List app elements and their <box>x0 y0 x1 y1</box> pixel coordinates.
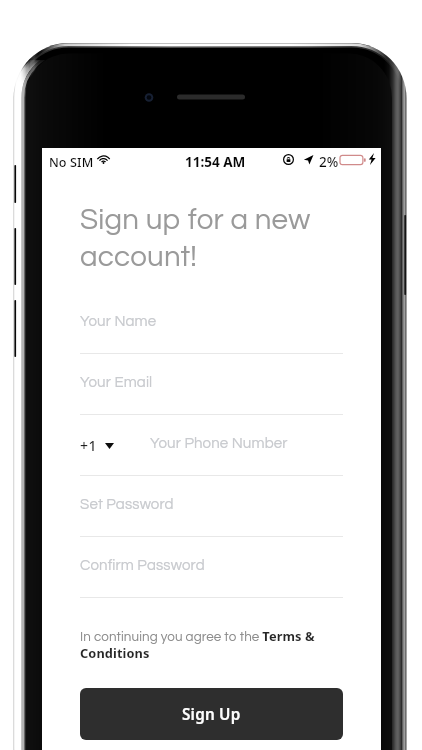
button[interactable]: Set Password <box>42 487 381 548</box>
button[interactable]: Confirm Password <box>42 548 381 609</box>
staticText: Sign up for a new account! <box>80 205 359 272</box>
staticText: 2% <box>319 153 339 171</box>
button[interactable]: In continuing you agree to the Terms & C… <box>80 627 343 661</box>
staticText: +1 <box>80 436 98 455</box>
button[interactable]: Your Name <box>42 304 381 365</box>
staticText: Your Name <box>80 314 157 329</box>
staticText: Your Phone Number <box>150 436 288 451</box>
staticText: Confirm Password <box>80 558 205 573</box>
button[interactable]: Sign Up <box>80 688 343 740</box>
staticText: 11:54 AM <box>185 153 246 171</box>
staticText: No SIM <box>49 154 94 171</box>
button[interactable]: Your Email <box>42 365 381 426</box>
button[interactable]: Select country code <box>80 436 114 455</box>
staticText: Your Email <box>80 375 153 390</box>
staticText: Set Password <box>80 497 174 512</box>
staticText: Sign Up <box>182 704 241 725</box>
